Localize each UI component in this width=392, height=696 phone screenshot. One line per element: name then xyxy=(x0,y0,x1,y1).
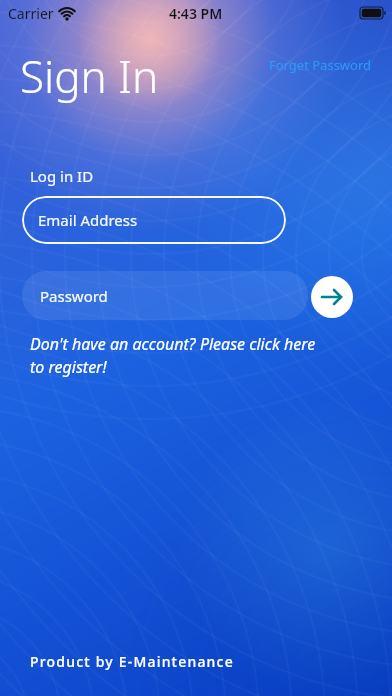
button[interactable] xyxy=(311,276,353,318)
button[interactable]: Forget Password xyxy=(263,50,378,80)
staticText: Log in ID xyxy=(30,166,94,186)
staticText: Product by E-Maintenance xyxy=(30,652,234,671)
button[interactable]: Don't have an account? Please click here… xyxy=(30,333,316,378)
button[interactable]: Password xyxy=(22,271,308,320)
staticText: 4:43 PM xyxy=(169,4,223,23)
staticText: Email Address xyxy=(38,210,138,230)
staticText: Forget Password xyxy=(269,56,372,74)
staticText: Carrier xyxy=(8,4,54,23)
staticText: Sign In xyxy=(20,46,159,106)
staticText: Password xyxy=(40,286,108,306)
button[interactable]: Email Address xyxy=(22,196,286,244)
staticText: Don't have an account? Please click here… xyxy=(30,333,316,378)
